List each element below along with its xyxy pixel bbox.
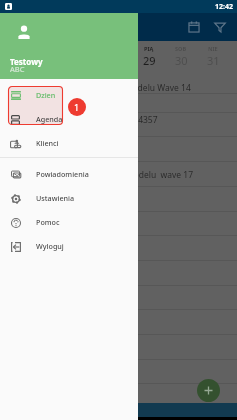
button[interactable]: Ustawienia [0,186,138,210]
staticText: Testowy [10,56,43,67]
staticText: ABC [10,64,25,74]
button[interactable]: Wyloguj [0,234,138,258]
staticText: PIĄ [144,45,154,52]
button[interactable]: WTO [39,41,70,71]
button[interactable]: Agenda [0,107,138,131]
button[interactable] [0,93,237,112]
button[interactable]: Kliknij aby przejsc do pelnej wersji [0,403,237,417]
button[interactable]: Powiadomienia [0,162,138,186]
button[interactable]: SOB [165,41,197,71]
staticText: 31 [207,53,220,68]
button[interactable]: Pomoc [0,210,138,234]
button[interactable]: NIE [197,41,229,71]
staticText: Agenda [36,114,63,124]
staticText: Pomoc [36,217,60,227]
staticText: 29 [143,53,156,68]
button[interactable] [0,235,237,260]
button[interactable] [0,211,237,236]
button[interactable] [0,334,237,359]
button[interactable]: PIĄ [133,41,165,71]
staticText: Klienci [36,138,59,148]
button[interactable] [0,285,237,309]
staticText: Ustawienia [36,193,75,203]
staticText: Wyloguj [36,241,64,251]
staticText: SOB [175,45,187,52]
staticText: NIE [208,45,218,52]
button[interactable]: Calendar [181,14,207,40]
button[interactable] [0,186,237,211]
staticText: Powiadomienia [36,169,89,179]
staticText: Dzien [36,90,56,100]
staticText: 1 [74,101,80,113]
button[interactable] [0,309,237,334]
staticText: Naprawa urzadzenia, nr seryjny 4357 [10,114,158,126]
staticText: 12:42 [215,2,233,12]
staticText: Wizyta serwisowa - przeglad modelu Wave … [10,82,191,94]
button[interactable] [0,161,237,186]
button[interactable] [0,359,237,383]
button[interactable]: Klienci [0,131,138,155]
button[interactable] [0,260,237,285]
button[interactable]: Dzien [0,83,138,107]
button[interactable]: Step 1 hint [68,98,86,116]
staticText: Rozmowa na temat naprawy modelu wave 17 [10,169,194,181]
staticText: 25 [17,53,30,68]
button[interactable] [0,136,237,161]
button[interactable] [0,71,237,93]
button[interactable]: Add appointment [197,379,220,402]
button[interactable]: PON [8,41,39,71]
button[interactable]: Filter [207,14,233,40]
button[interactable] [0,112,237,137]
staticText: 30 [175,53,188,68]
